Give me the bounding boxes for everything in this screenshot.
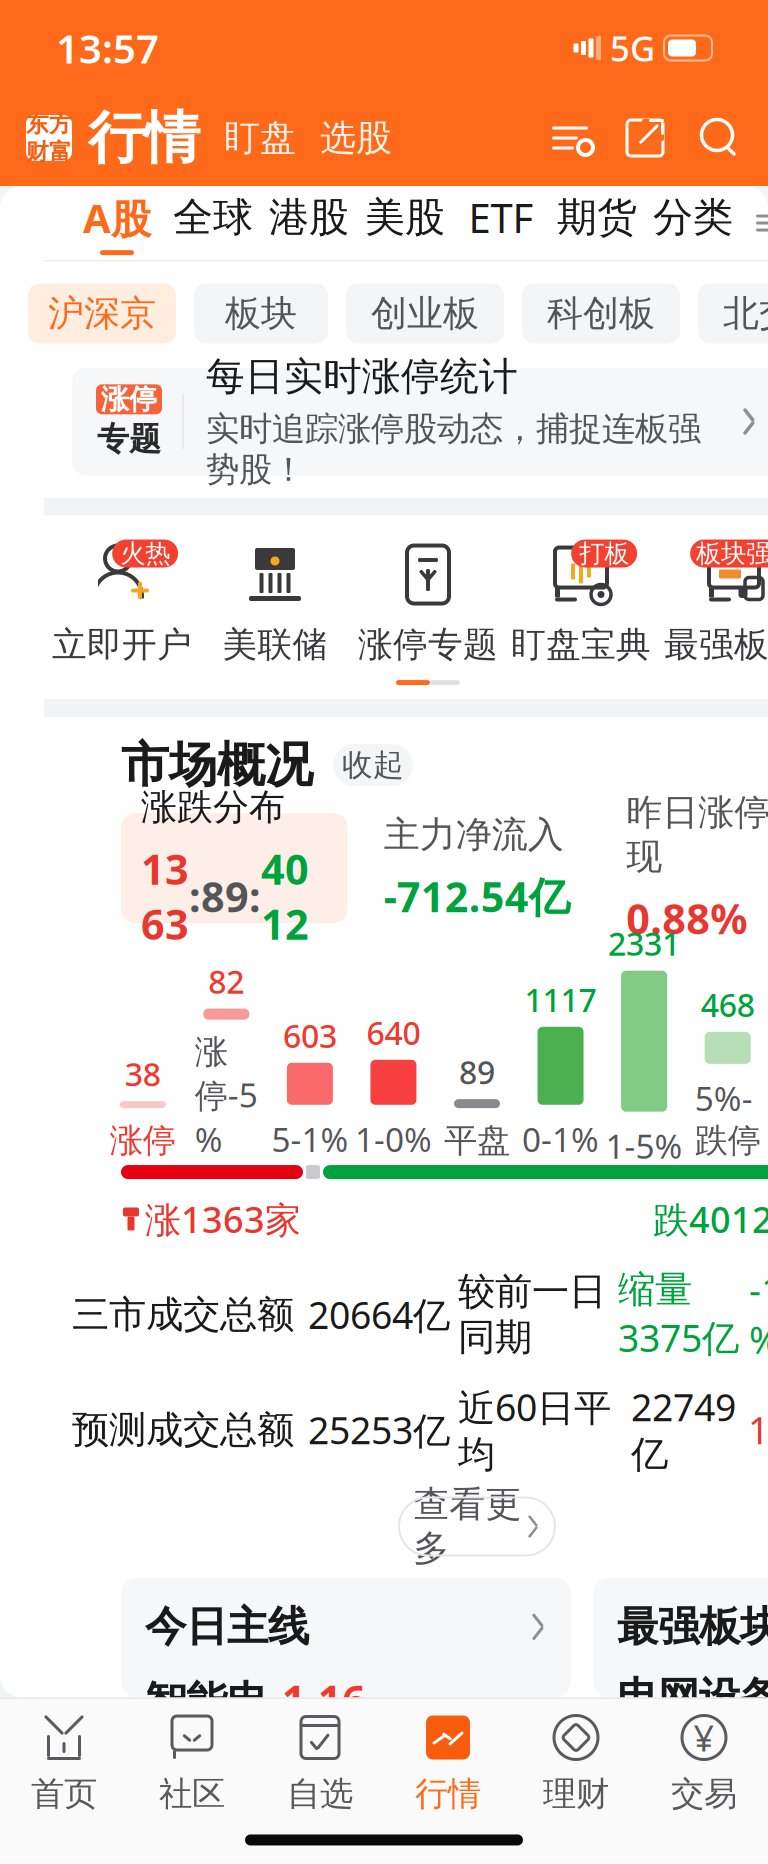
staticText: 缩量3375亿 — [618, 1267, 739, 1362]
button[interactable]: 主力净流入 — [364, 813, 590, 923]
staticText: 板块 — [225, 291, 297, 336]
staticText: 打板 — [579, 538, 629, 569]
button[interactable]: 北交所 — [698, 283, 768, 343]
staticText: 1.16% — [282, 1672, 366, 1782]
staticText: 38 — [125, 1053, 161, 1095]
button[interactable]: 火热 — [45, 537, 198, 666]
button[interactable]: 美联储 — [198, 537, 351, 666]
staticText: 预测成交总额 — [72, 1407, 294, 1453]
button[interactable]: 搜索 — [668, 115, 742, 161]
staticText: 5-1% — [271, 1117, 348, 1161]
staticText: 理财 — [543, 1773, 609, 1814]
staticText: 每日实时涨停统计 — [206, 353, 518, 400]
staticText: -712.54亿 — [384, 869, 570, 924]
staticText: 科创板 — [547, 291, 655, 336]
staticText: 涨停专题 — [358, 623, 498, 666]
staticText: : — [249, 869, 261, 924]
staticText: 涨停 — [110, 1120, 176, 1161]
staticText: 603 — [283, 1014, 337, 1057]
button[interactable]: 分类 — [645, 189, 741, 257]
button[interactable]: 首页 — [0, 1713, 128, 1813]
staticText: 选股 — [320, 116, 392, 160]
button[interactable]: 打板 — [504, 537, 657, 666]
staticText: 行情 — [415, 1773, 481, 1814]
button[interactable]: 市场概况 — [93, 717, 768, 813]
staticText: 市场概况 — [121, 736, 313, 795]
button[interactable]: 今日主线 — [121, 1577, 571, 1697]
staticText: 盯盘宝典 — [511, 623, 651, 666]
button[interactable]: 涨停 — [44, 367, 768, 475]
staticText: 盯盘 — [224, 116, 296, 160]
button[interactable]: 筛选设置 — [550, 116, 594, 160]
button[interactable]: 分享 — [594, 115, 668, 161]
staticText: 涨停 — [101, 382, 157, 417]
staticText: 89 — [459, 1051, 495, 1093]
staticText: 跌4012家 — [653, 1195, 768, 1243]
staticText: 财富 — [26, 138, 72, 166]
button[interactable]: 查看更多 — [399, 1497, 555, 1555]
staticText: 三市成交总额 — [72, 1291, 294, 1337]
staticText: : — [189, 869, 201, 924]
button[interactable]: 板块 — [194, 283, 328, 343]
button[interactable]: 涨跌分布 — [121, 813, 348, 923]
staticText: ETF — [468, 191, 533, 244]
staticText: 板块强度 — [696, 538, 768, 569]
staticText: 1-5% — [606, 1124, 683, 1168]
staticText: 640 — [366, 1011, 420, 1054]
staticText: 涨1363家 — [145, 1195, 301, 1243]
staticText: ¥ — [693, 1714, 714, 1761]
staticText: -14.04% — [749, 1265, 768, 1364]
button[interactable]: 盯盘 — [200, 108, 296, 168]
staticText: 12 — [400, 1703, 442, 1751]
staticText: 4012 — [261, 841, 309, 951]
button[interactable]: 全球 — [165, 189, 261, 257]
staticText: 主力净流入 — [384, 812, 564, 857]
staticText: 交易 — [671, 1773, 737, 1814]
staticText: 分类 — [653, 193, 733, 242]
staticText: 北交所 — [723, 291, 768, 336]
staticText: 较前一日同期 — [458, 1269, 606, 1360]
button[interactable]: 行情 — [384, 1713, 512, 1813]
button[interactable]: 选股 — [296, 108, 392, 168]
button[interactable]: 昨日涨停表现 — [606, 813, 768, 923]
button[interactable]: 沪深京 — [28, 283, 176, 343]
staticText: 家涨停 — [442, 1706, 547, 1748]
staticText: 468 — [701, 983, 755, 1026]
button[interactable]: 理财 — [512, 1713, 640, 1813]
staticText: 智能电网 — [145, 1676, 268, 1778]
staticText: A股 — [83, 191, 151, 244]
staticText: 美联储 — [222, 623, 327, 666]
button[interactable]: 板块强度 — [657, 537, 768, 666]
button[interactable]: 港股 — [261, 189, 357, 257]
button[interactable]: 期货 — [549, 189, 645, 257]
staticText: 行情 — [88, 104, 200, 172]
staticText: 火热 — [120, 538, 170, 569]
staticText: 25253亿 — [308, 1405, 450, 1455]
button[interactable]: ETF — [453, 187, 549, 259]
button[interactable]: 最强板块 — [593, 1577, 768, 1697]
staticText: 美股 — [365, 193, 445, 242]
staticText: 89 — [201, 869, 249, 924]
staticText: 专题 — [97, 419, 161, 459]
staticText: 11.01% — [748, 1405, 768, 1455]
staticText: 期货 — [557, 193, 637, 242]
staticText: 2331 — [608, 922, 680, 965]
button[interactable]: 自选 — [256, 1713, 384, 1813]
staticText: 实时追踪涨停股动态，捕捉连板强势股！ — [206, 408, 701, 490]
button[interactable]: ¥ — [640, 1713, 768, 1813]
button[interactable]: 涨停专题 — [351, 537, 504, 666]
button[interactable]: 美股 — [357, 189, 453, 257]
button[interactable]: A股 — [69, 187, 165, 259]
staticText: 首页 — [31, 1773, 97, 1814]
staticText: 20664亿 — [308, 1290, 450, 1339]
staticText: 最强板块 — [617, 1601, 768, 1652]
staticText: 最强板块 — [664, 623, 768, 666]
staticText: 创业板 — [371, 291, 479, 336]
staticText: 5%-跌停 — [695, 1076, 761, 1161]
button[interactable]: 社区 — [128, 1713, 256, 1813]
staticText: 0.88% — [626, 891, 747, 946]
button[interactable]: 科创板 — [522, 283, 680, 343]
staticText: 查看更多 — [413, 1482, 521, 1571]
button[interactable]: 创业板 — [346, 283, 504, 343]
button[interactable]: 更多分类 — [741, 200, 768, 246]
